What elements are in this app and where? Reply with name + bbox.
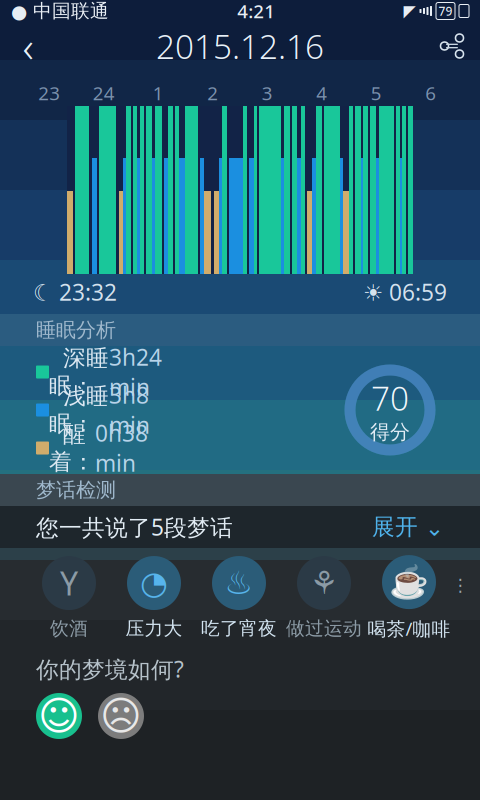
- staticText: 4: [316, 81, 327, 105]
- staticText: 5: [371, 81, 382, 105]
- staticText: 3h24min: [109, 342, 162, 402]
- staticText: ◤: [403, 2, 415, 20]
- staticText: 70: [371, 376, 409, 420]
- button[interactable]: Good dream: [36, 693, 82, 739]
- staticText: 做过运动: [286, 617, 362, 640]
- staticText: ☀ 06:59: [363, 277, 447, 307]
- staticText: 梦话检测: [36, 478, 116, 502]
- staticText: 浅睡眠：: [49, 382, 109, 438]
- staticText: 3: [262, 81, 273, 105]
- staticText: 3h8min: [109, 380, 150, 440]
- staticText: 得分: [370, 420, 410, 444]
- staticText: 2: [207, 81, 218, 105]
- staticText: 79: [438, 3, 452, 19]
- staticText: ♨: [224, 565, 253, 601]
- staticText: 6: [425, 81, 436, 105]
- staticText: 深睡眠：: [49, 344, 109, 400]
- staticText: ☾ 23:32: [33, 277, 117, 307]
- button[interactable]: ☕: [366, 555, 451, 641]
- button[interactable]: ⚘: [281, 556, 366, 640]
- staticText: 吃了宵夜: [201, 617, 277, 640]
- staticText: 展开 ⌄: [372, 513, 444, 541]
- staticText: 你的梦境如何?: [36, 654, 184, 684]
- button[interactable]: 您一共说了5段梦话: [0, 506, 480, 548]
- staticText: 4:21: [237, 0, 275, 23]
- staticText: ⚘: [309, 565, 338, 601]
- staticText: 压力大: [125, 617, 182, 640]
- staticText: 0h38min: [95, 418, 148, 478]
- staticText: ◔: [140, 565, 168, 601]
- staticText: 23: [38, 81, 60, 105]
- staticText: ☺: [38, 693, 80, 739]
- button[interactable]: ♨: [196, 556, 281, 640]
- staticText: 1: [153, 81, 164, 105]
- staticText: ‹: [22, 18, 33, 74]
- button[interactable]: Share: [424, 22, 480, 70]
- button[interactable]: Back: [0, 22, 56, 70]
- staticText: 醒着：: [49, 420, 95, 476]
- staticText: ● 中国联通: [11, 0, 109, 22]
- button[interactable]: ◔: [111, 556, 196, 640]
- staticText: 24: [93, 81, 115, 105]
- staticText: 睡眠分析: [36, 318, 116, 342]
- staticText: Y: [60, 562, 78, 604]
- staticText: ☹: [100, 693, 142, 739]
- staticText: ☕: [389, 564, 429, 600]
- button[interactable]: Y: [26, 556, 111, 640]
- button[interactable]: Bad dream: [98, 693, 144, 739]
- staticText: 饮酒: [50, 617, 88, 640]
- staticText: 喝茶/咖啡: [367, 616, 450, 641]
- staticText: 您一共说了5段梦话: [36, 512, 233, 542]
- staticText: ⋮: [451, 575, 468, 595]
- staticText: 2015.12.16: [156, 24, 324, 68]
